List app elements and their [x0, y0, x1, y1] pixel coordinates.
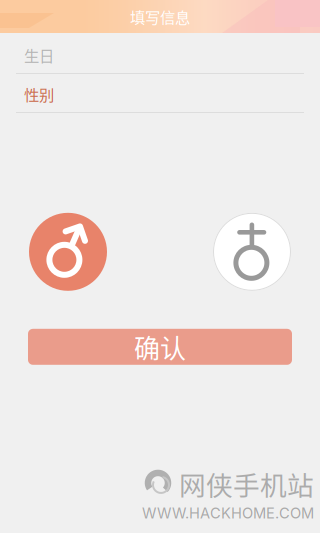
staticText: 确认 — [134, 328, 186, 366]
button[interactable]: 确认 — [28, 329, 292, 365]
staticText: 网侠手机站 — [179, 465, 314, 503]
staticText: 生日 — [24, 44, 54, 66]
button[interactable]: Male — [29, 213, 107, 291]
button[interactable]: Female — [213, 213, 291, 291]
staticText: 填写信息 — [130, 5, 190, 28]
staticText: WWW.HACKHOME.COM — [142, 504, 314, 522]
staticText: 性别 — [24, 83, 54, 105]
